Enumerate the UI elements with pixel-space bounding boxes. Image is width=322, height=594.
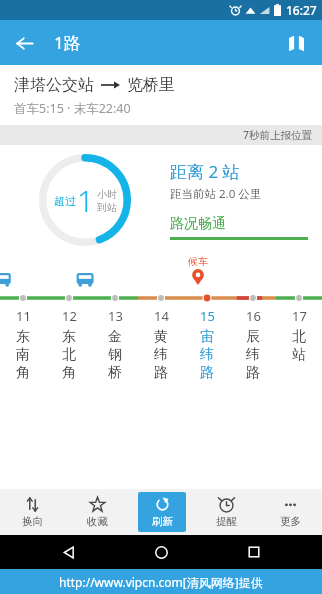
staticText: 收藏: [87, 515, 108, 528]
staticText: 17: [292, 307, 307, 325]
staticText: 东: [16, 328, 30, 346]
staticText: 金: [108, 328, 122, 346]
staticText: 刷新: [152, 515, 173, 528]
staticText: 纬: [200, 346, 214, 364]
button[interactable]: 11: [0, 307, 46, 382]
staticText: 辰: [246, 328, 260, 346]
staticText: 7秒前上报位置: [243, 128, 313, 142]
staticText: 1: [77, 180, 95, 221]
staticText: 览桥里: [127, 75, 175, 95]
button[interactable]: Back: [6, 25, 42, 61]
staticText: 12: [62, 307, 77, 325]
staticText: 小时: [97, 188, 117, 201]
staticText: 角: [62, 364, 76, 382]
staticText: 黄: [154, 328, 168, 346]
staticText: 换向: [22, 515, 43, 528]
button[interactable]: Map: [278, 25, 314, 61]
staticText: 纬: [246, 346, 260, 364]
staticText: 距当前站 2.0 公里: [170, 186, 262, 202]
button[interactable]: 换向: [8, 492, 57, 532]
staticText: 东: [62, 328, 76, 346]
button[interactable]: 15: [184, 307, 230, 382]
staticText: 路: [200, 364, 214, 382]
button[interactable]: 12: [46, 307, 92, 382]
staticText: 14: [154, 307, 169, 325]
staticText: 更多: [280, 515, 301, 528]
staticText: 15: [200, 307, 215, 325]
staticText: 津塔公交站: [14, 75, 94, 95]
button[interactable]: 17: [276, 307, 322, 364]
staticText: 距离 2 站: [170, 160, 240, 183]
button[interactable]: 收藏: [73, 492, 122, 532]
staticText: 路: [154, 364, 168, 382]
staticText: 16: [246, 307, 261, 325]
button[interactable]: Home: [148, 539, 174, 565]
staticText: 北: [292, 328, 306, 346]
button[interactable]: 更多: [266, 492, 314, 532]
staticText: 桥: [108, 364, 122, 382]
button[interactable]: 刷新: [138, 492, 186, 532]
staticText: 路: [246, 364, 260, 382]
staticText: 纬: [154, 346, 168, 364]
staticText: 提醒: [216, 515, 237, 528]
button[interactable]: 13: [92, 307, 138, 382]
staticText: 到站: [97, 201, 117, 214]
staticText: 超过: [54, 194, 76, 208]
staticText: 南: [16, 346, 30, 364]
staticText: 宙: [200, 328, 214, 346]
staticText: 1路: [54, 31, 81, 54]
button[interactable]: 14: [138, 307, 184, 382]
staticText: 北: [62, 346, 76, 364]
staticText: 站: [292, 346, 306, 364]
staticText: 路况畅通: [170, 215, 226, 233]
button[interactable]: 16: [230, 307, 276, 382]
staticText: 钢: [108, 346, 122, 364]
staticText: 角: [16, 364, 30, 382]
staticText: 13: [108, 307, 123, 325]
staticText: http://www.vipcn.com[清风网络]提供: [59, 574, 263, 590]
button[interactable]: 提醒: [202, 492, 250, 532]
button[interactable]: Back: [55, 539, 81, 565]
button[interactable]: Recents: [241, 539, 267, 565]
staticText: 11: [16, 307, 31, 325]
staticText: 候车: [188, 255, 208, 268]
staticText: 首车5:15 · 末车22:40: [14, 100, 131, 117]
staticText: 16:27: [286, 2, 317, 18]
